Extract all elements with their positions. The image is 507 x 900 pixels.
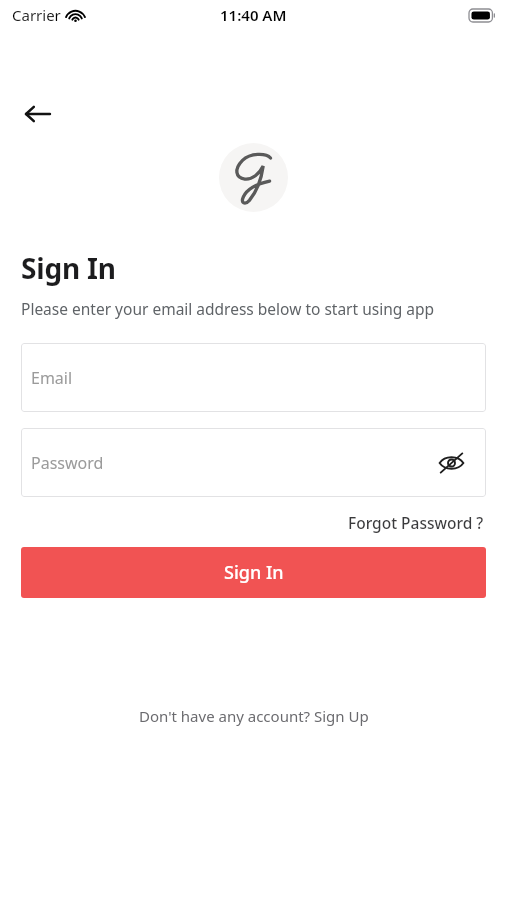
staticText: Carrier — [12, 5, 61, 25]
staticText: Forgot Password ? — [348, 512, 484, 533]
button[interactable]: Show password — [434, 446, 468, 480]
button[interactable]: Password — [21, 428, 486, 497]
button[interactable]: Email — [21, 343, 486, 412]
button[interactable]: Don't have any account? Sign Up — [133, 702, 375, 730]
staticText: Email — [31, 367, 73, 389]
button[interactable]: Back — [16, 92, 60, 136]
staticText: Sign In — [224, 560, 284, 585]
button[interactable]: Forgot Password ? — [346, 509, 486, 536]
staticText: Don't have any account? Sign Up — [139, 706, 369, 726]
staticText: Sign In — [21, 249, 116, 287]
staticText: Password — [31, 452, 104, 474]
staticText: Please enter your email address below to… — [21, 298, 486, 319]
button[interactable]: Sign In — [21, 547, 486, 598]
staticText: 11:40 AM — [220, 5, 287, 25]
